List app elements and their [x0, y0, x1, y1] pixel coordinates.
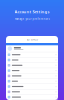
- button[interactable]: [6, 89, 58, 95]
- button[interactable]: [6, 45, 58, 52]
- button[interactable]: [6, 52, 58, 57]
- staticText: SETTINGS: [26, 38, 37, 41]
- button[interactable]: [6, 79, 58, 84]
- button[interactable]: [6, 84, 58, 89]
- button[interactable]: [6, 95, 58, 100]
- staticText: Account Settings: [14, 9, 49, 14]
- button[interactable]: [6, 73, 58, 79]
- staticText: manage your preferences: [14, 17, 49, 21]
- button[interactable]: [6, 63, 58, 68]
- button[interactable]: [6, 68, 58, 73]
- button[interactable]: [6, 57, 58, 63]
